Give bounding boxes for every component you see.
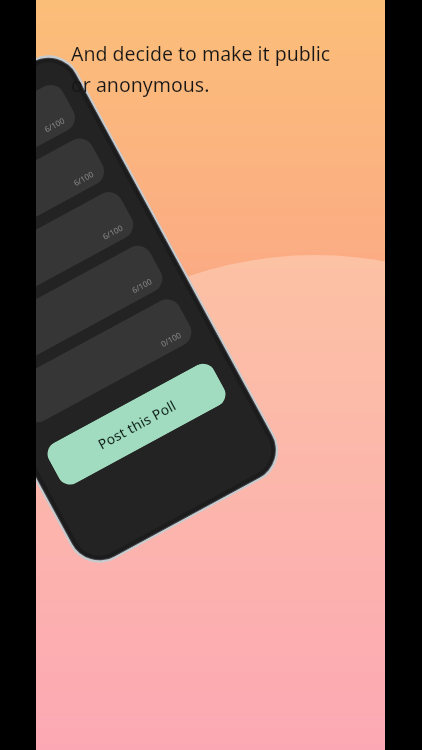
staticText: 6/100 bbox=[71, 168, 96, 188]
button[interactable]: 6/100 bbox=[36, 133, 109, 267]
staticText: And decide to make it public or anonymou… bbox=[71, 40, 331, 98]
button[interactable]: 0/100 bbox=[36, 294, 197, 428]
staticText: 6/100 bbox=[130, 275, 154, 295]
staticText: 0/100 bbox=[159, 329, 183, 349]
staticText: 6/100 bbox=[42, 114, 67, 134]
button[interactable]: Post this Poll bbox=[43, 359, 230, 489]
button[interactable]: 6/100 bbox=[36, 80, 80, 213]
button[interactable]: Create poll screen preview bbox=[36, 44, 290, 574]
button[interactable]: 6/100 bbox=[36, 187, 138, 320]
button[interactable]: 6/100 bbox=[36, 240, 168, 374]
staticText: Post this Poll bbox=[94, 396, 179, 453]
staticText: 6/100 bbox=[100, 221, 125, 242]
